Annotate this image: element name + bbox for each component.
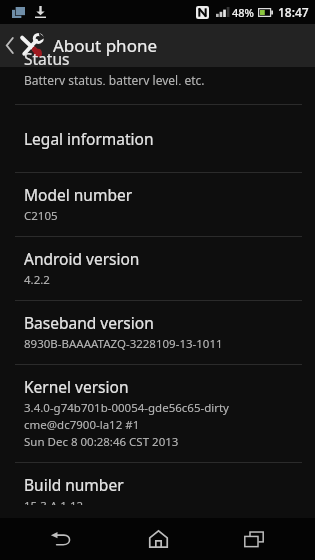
staticText: C2105 <box>24 208 58 224</box>
staticText: About phone <box>53 34 158 57</box>
staticText: 48% <box>232 5 254 20</box>
button[interactable]: Status <box>0 67 315 104</box>
staticText: Status <box>24 48 70 69</box>
button[interactable]: Up, About phone <box>0 24 315 67</box>
staticText: Model number <box>24 184 133 205</box>
staticText: Android version <box>24 248 140 269</box>
button[interactable]: Android version <box>0 237 315 300</box>
button[interactable]: Legal information <box>0 105 315 172</box>
staticText: Sun Dec 8 00:28:46 CST 2013 <box>24 434 179 450</box>
staticText: Baseband version <box>24 312 154 333</box>
button[interactable]: Back <box>26 518 96 560</box>
staticText: 4.2.2 <box>24 272 50 288</box>
staticText: 3.4.0-g74b701b-00054-gde56c65-dirty <box>24 400 229 416</box>
staticText: cme@dc7900-la12 #1 <box>24 417 140 433</box>
staticText: 8930B-BAAAATAZQ-3228109-13-1011 <box>24 336 223 352</box>
button[interactable]: Build number <box>0 463 315 517</box>
staticText: Battery status, battery level, etc. <box>24 72 205 85</box>
staticText: 18:47 <box>278 4 309 20</box>
staticText: Legal information <box>24 128 154 149</box>
staticText: Kernel version <box>24 376 129 397</box>
staticText: 15.3.A.1.12 <box>24 498 84 505</box>
button[interactable]: Recent apps <box>219 518 289 560</box>
button[interactable]: Kernel version <box>0 365 315 462</box>
staticText: Build number <box>24 474 124 495</box>
button[interactable]: Baseband version <box>0 301 315 364</box>
button[interactable]: Model number <box>0 173 315 236</box>
button[interactable]: Home <box>123 518 193 560</box>
